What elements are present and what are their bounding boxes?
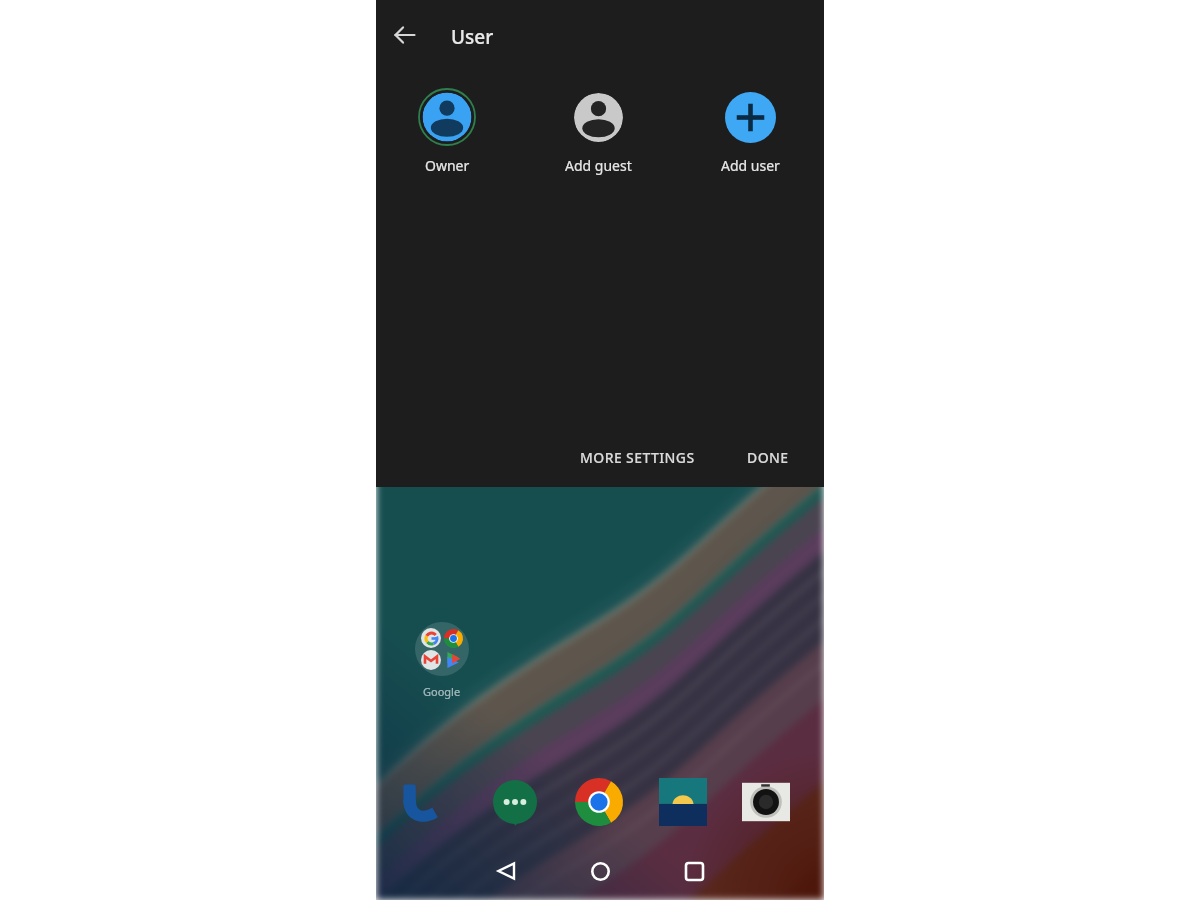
button[interactable]: MORE SETTINGS (570, 440, 705, 475)
button[interactable]: Phone (394, 775, 448, 829)
button[interactable]: Owner (402, 88, 492, 175)
staticText: Google (423, 684, 461, 699)
button[interactable]: Photos (656, 775, 710, 829)
button[interactable]: Recents (677, 854, 711, 888)
staticText: User (451, 24, 494, 50)
staticText: DONE (747, 448, 789, 467)
button[interactable]: Back (385, 15, 425, 55)
button[interactable]: Messages (488, 775, 542, 829)
button[interactable]: Home (583, 854, 617, 888)
button[interactable]: Google (407, 622, 477, 699)
button[interactable]: Chrome (572, 775, 626, 829)
staticText: MORE SETTINGS (580, 448, 695, 467)
button[interactable]: Camera (739, 775, 793, 829)
button[interactable]: Add user (705, 88, 795, 175)
staticText: Add user (721, 156, 780, 175)
button[interactable]: Add guest (553, 88, 643, 175)
staticText: Add guest (565, 156, 632, 175)
button[interactable]: DONE (737, 440, 799, 475)
staticText: Owner (425, 156, 470, 175)
button[interactable]: Back (489, 854, 523, 888)
